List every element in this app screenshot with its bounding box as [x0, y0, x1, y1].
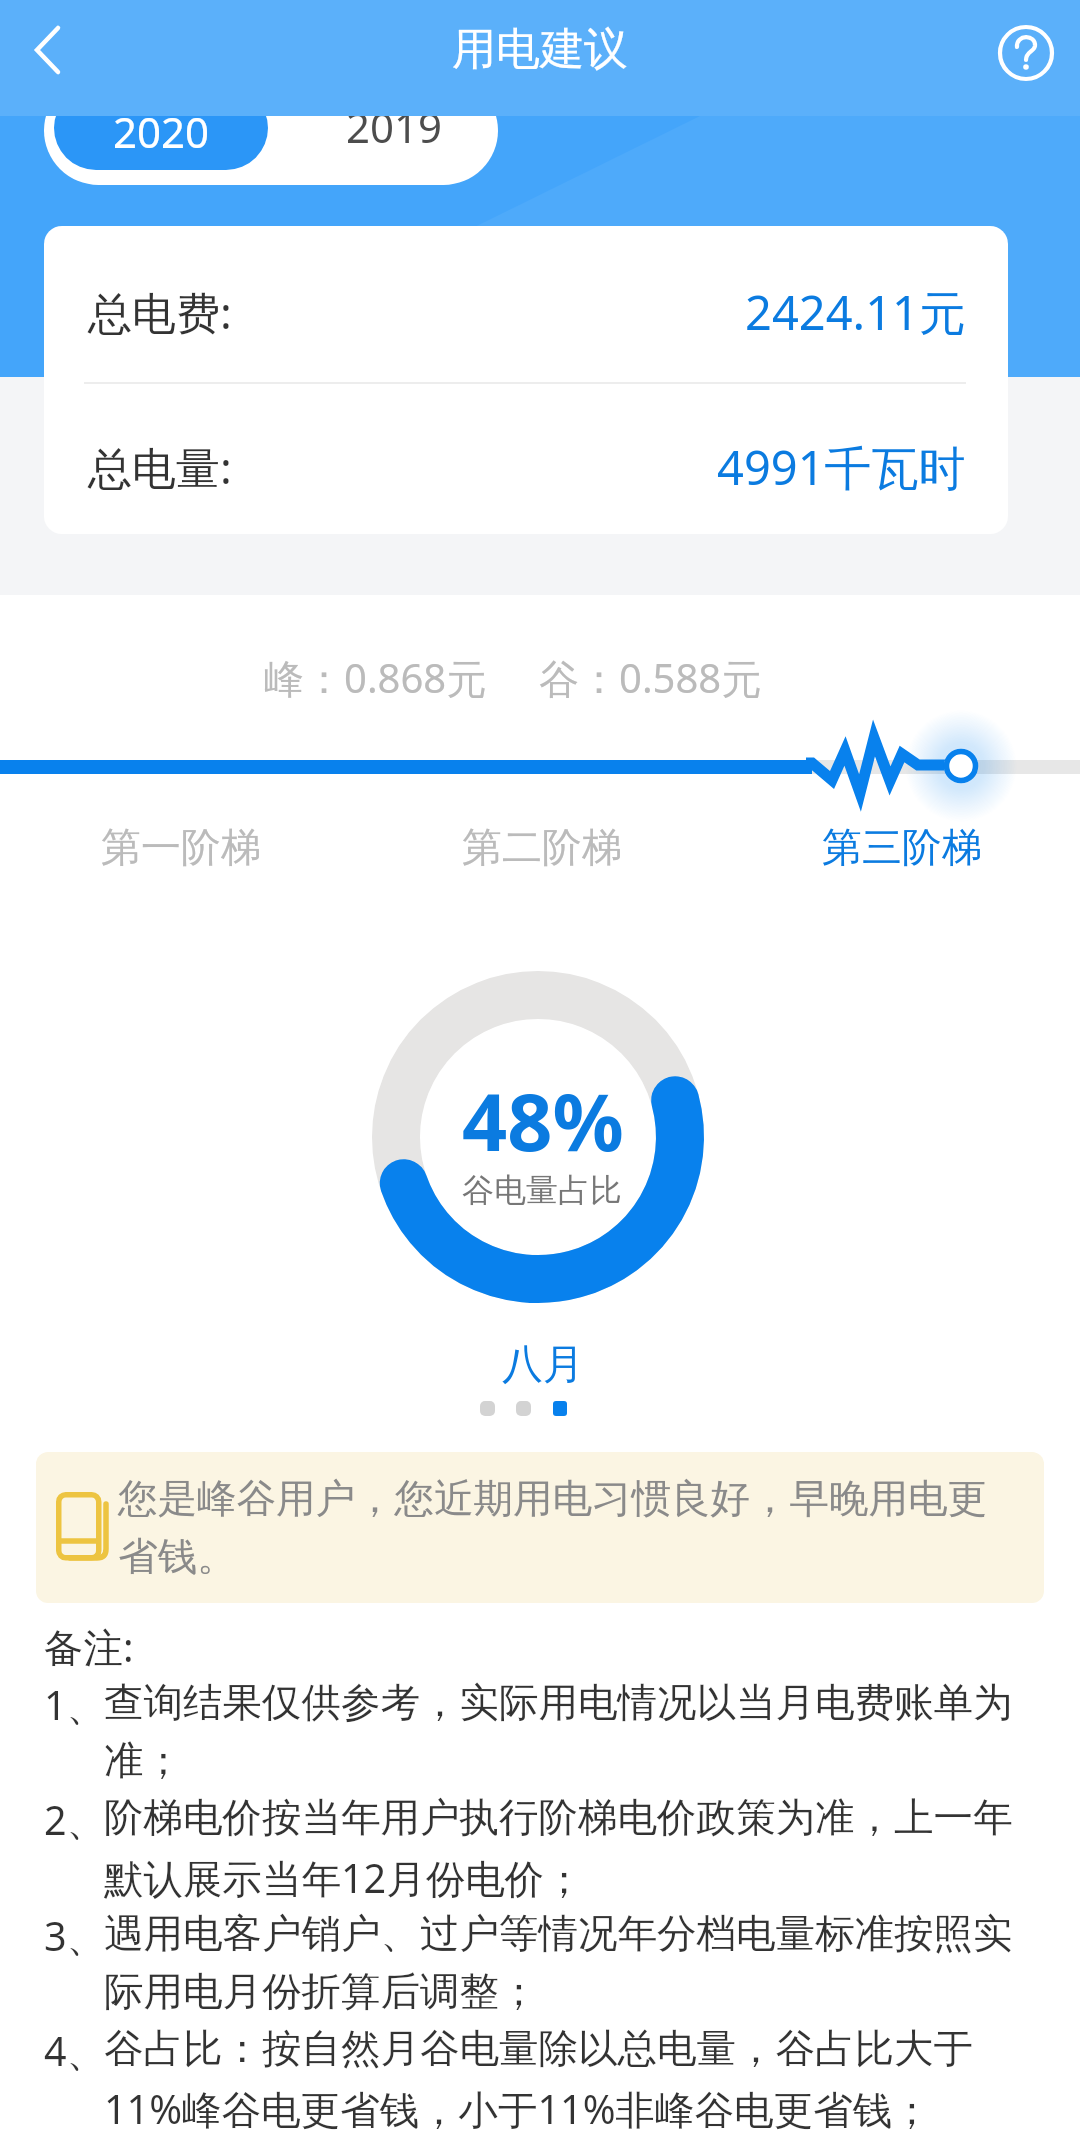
staticText: 第二阶梯: [462, 822, 622, 872]
staticText: 备注:: [44, 1620, 134, 1674]
staticText: 2020: [113, 103, 210, 160]
staticText: 3、: [44, 1909, 107, 1963]
button[interactable]: Back: [0, 0, 92, 116]
staticText: 准；: [104, 1736, 183, 1786]
staticText: 1、: [44, 1678, 107, 1732]
staticText: 谷：0.588元: [539, 650, 762, 705]
staticText: 您是峰谷用户，您近期用电习惯良好，早晚用电更 省钱。: [118, 1474, 987, 1582]
staticText: 际用电月份折算后调整；: [104, 1967, 539, 2017]
staticText: 4991千瓦时: [717, 435, 966, 499]
staticText: 48%: [462, 1067, 624, 1175]
staticText: 总电费:: [88, 282, 232, 342]
staticText: 2019: [346, 98, 443, 155]
staticText: 用电建议: [452, 22, 628, 77]
staticText: 2424.11元: [745, 280, 966, 344]
button[interactable]: 2019: [268, 76, 498, 180]
staticText: 11%峰谷电更省钱，小于11%非峰谷电更省钱；: [104, 2082, 932, 2133]
button[interactable]: 2020: [54, 86, 268, 170]
staticText: 默认展示当年12月份电价；: [104, 1851, 584, 1905]
staticText: 查询结果仅供参考，实际用电情况以当月电费账单为: [104, 1678, 1013, 1728]
staticText: 谷占比：按自然月谷电量除以总电量，谷占比大于: [104, 2024, 973, 2074]
staticText: 2、: [44, 1793, 107, 1847]
staticText: 遇用电客户销户、过户等情况年分档电量标准按照实: [104, 1909, 1013, 1959]
staticText: 总电量:: [88, 437, 232, 497]
staticText: 第一阶梯: [101, 822, 261, 872]
button[interactable]: Help: [974, 0, 1080, 116]
staticText: 4、: [44, 2024, 107, 2078]
staticText: 谷电量占比: [462, 1170, 622, 1210]
staticText: 峰：0.868元: [264, 650, 487, 705]
staticText: 阶梯电价按当年用户执行阶梯电价政策为准，上一年: [104, 1793, 1013, 1843]
staticText: 八月: [502, 1339, 584, 1391]
staticText: 第三阶梯: [822, 822, 982, 872]
